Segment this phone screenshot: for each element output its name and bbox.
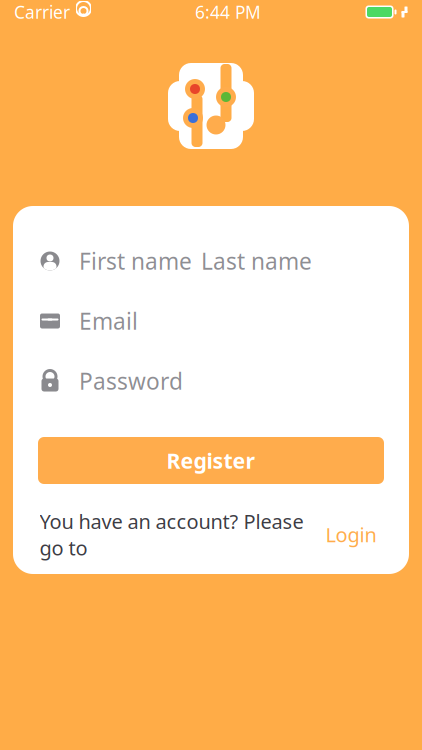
staticText: 6:44 PM xyxy=(195,0,261,23)
staticText: Login xyxy=(325,521,376,548)
staticText: Carrier xyxy=(14,0,70,23)
staticText: Register xyxy=(166,446,255,475)
staticText: You have an account? Please go to xyxy=(39,508,303,561)
staticText: Email xyxy=(79,306,138,336)
button[interactable]: Last name xyxy=(201,246,341,276)
button[interactable]: First name xyxy=(79,246,201,276)
button[interactable]: Register xyxy=(38,437,384,484)
button[interactable]: Email xyxy=(79,306,359,336)
staticText: First name xyxy=(79,246,192,276)
staticText: Last name xyxy=(201,246,312,276)
button[interactable]: Login xyxy=(319,517,382,552)
staticText: Password xyxy=(79,366,183,396)
button[interactable]: Password xyxy=(79,366,359,396)
